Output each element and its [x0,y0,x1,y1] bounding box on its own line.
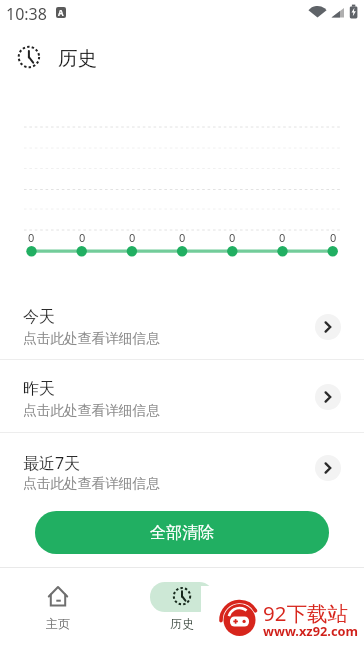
staticText: 92下载站 [263,599,348,627]
staticText: A [58,7,64,18]
staticText: 点击此处查看详细信息 [23,475,160,492]
button[interactable]: 昨天 [0,359,364,431]
staticText: 0 [179,230,186,245]
staticText: 点击此处查看详细信息 [23,330,160,347]
button[interactable]: 全部清除 [35,511,329,554]
button[interactable]: 最近7天 [0,432,364,504]
staticText: 0 [279,230,286,245]
staticText: 全部清除 [150,523,214,543]
staticText: 0 [79,230,86,245]
button[interactable]: 历史 [134,572,230,642]
staticText: 0 [28,230,35,245]
staticText: 今天 [23,307,55,327]
staticText: 10:38 [6,3,47,25]
staticText: 点击此处查看详细信息 [23,402,160,419]
staticText: 昨天 [23,379,55,399]
button[interactable]: 今天 [0,287,364,359]
staticText: 0 [129,230,136,245]
staticText: 历史 [58,46,97,71]
staticText: 0 [229,230,236,245]
staticText: 最近7天 [23,452,81,474]
button[interactable]: 主页 [10,572,106,642]
staticText: 主页 [46,616,70,631]
staticText: 0 [330,230,337,245]
staticText: www.xz92.com [263,622,358,639]
staticText: 历史 [170,616,194,631]
